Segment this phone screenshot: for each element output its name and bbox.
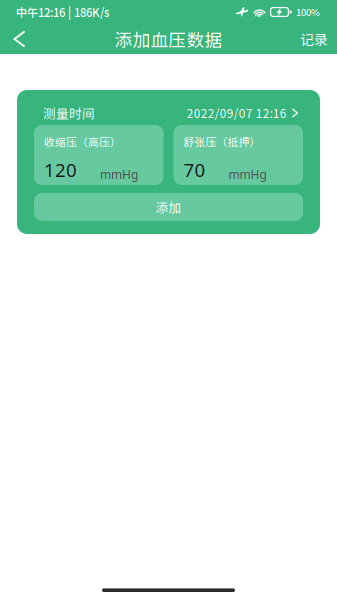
staticText: mmHg — [100, 166, 138, 182]
staticText: 收缩压（高压） — [44, 134, 121, 149]
staticText: 2022/09/07 12:16 — [187, 104, 287, 121]
staticText: 中午12:16 | 186K/s — [16, 4, 109, 20]
staticText: 添加 — [155, 198, 181, 216]
button[interactable]: 记录 — [282, 24, 337, 54]
staticText: mmHg — [228, 166, 266, 182]
staticText: 测量时间 — [43, 104, 95, 122]
staticText: 120 — [44, 157, 77, 182]
button[interactable]: 返回 — [0, 24, 43, 54]
staticText: 舒张压（抵押） — [183, 134, 260, 149]
button[interactable]: 主屏幕 — [102, 584, 235, 596]
button[interactable]: 添加 — [34, 193, 303, 221]
staticText: 记录 — [300, 29, 328, 49]
staticText: 100% — [296, 5, 320, 19]
staticText: 70 — [183, 157, 205, 182]
staticText: 添加血压数据 — [114, 26, 222, 52]
